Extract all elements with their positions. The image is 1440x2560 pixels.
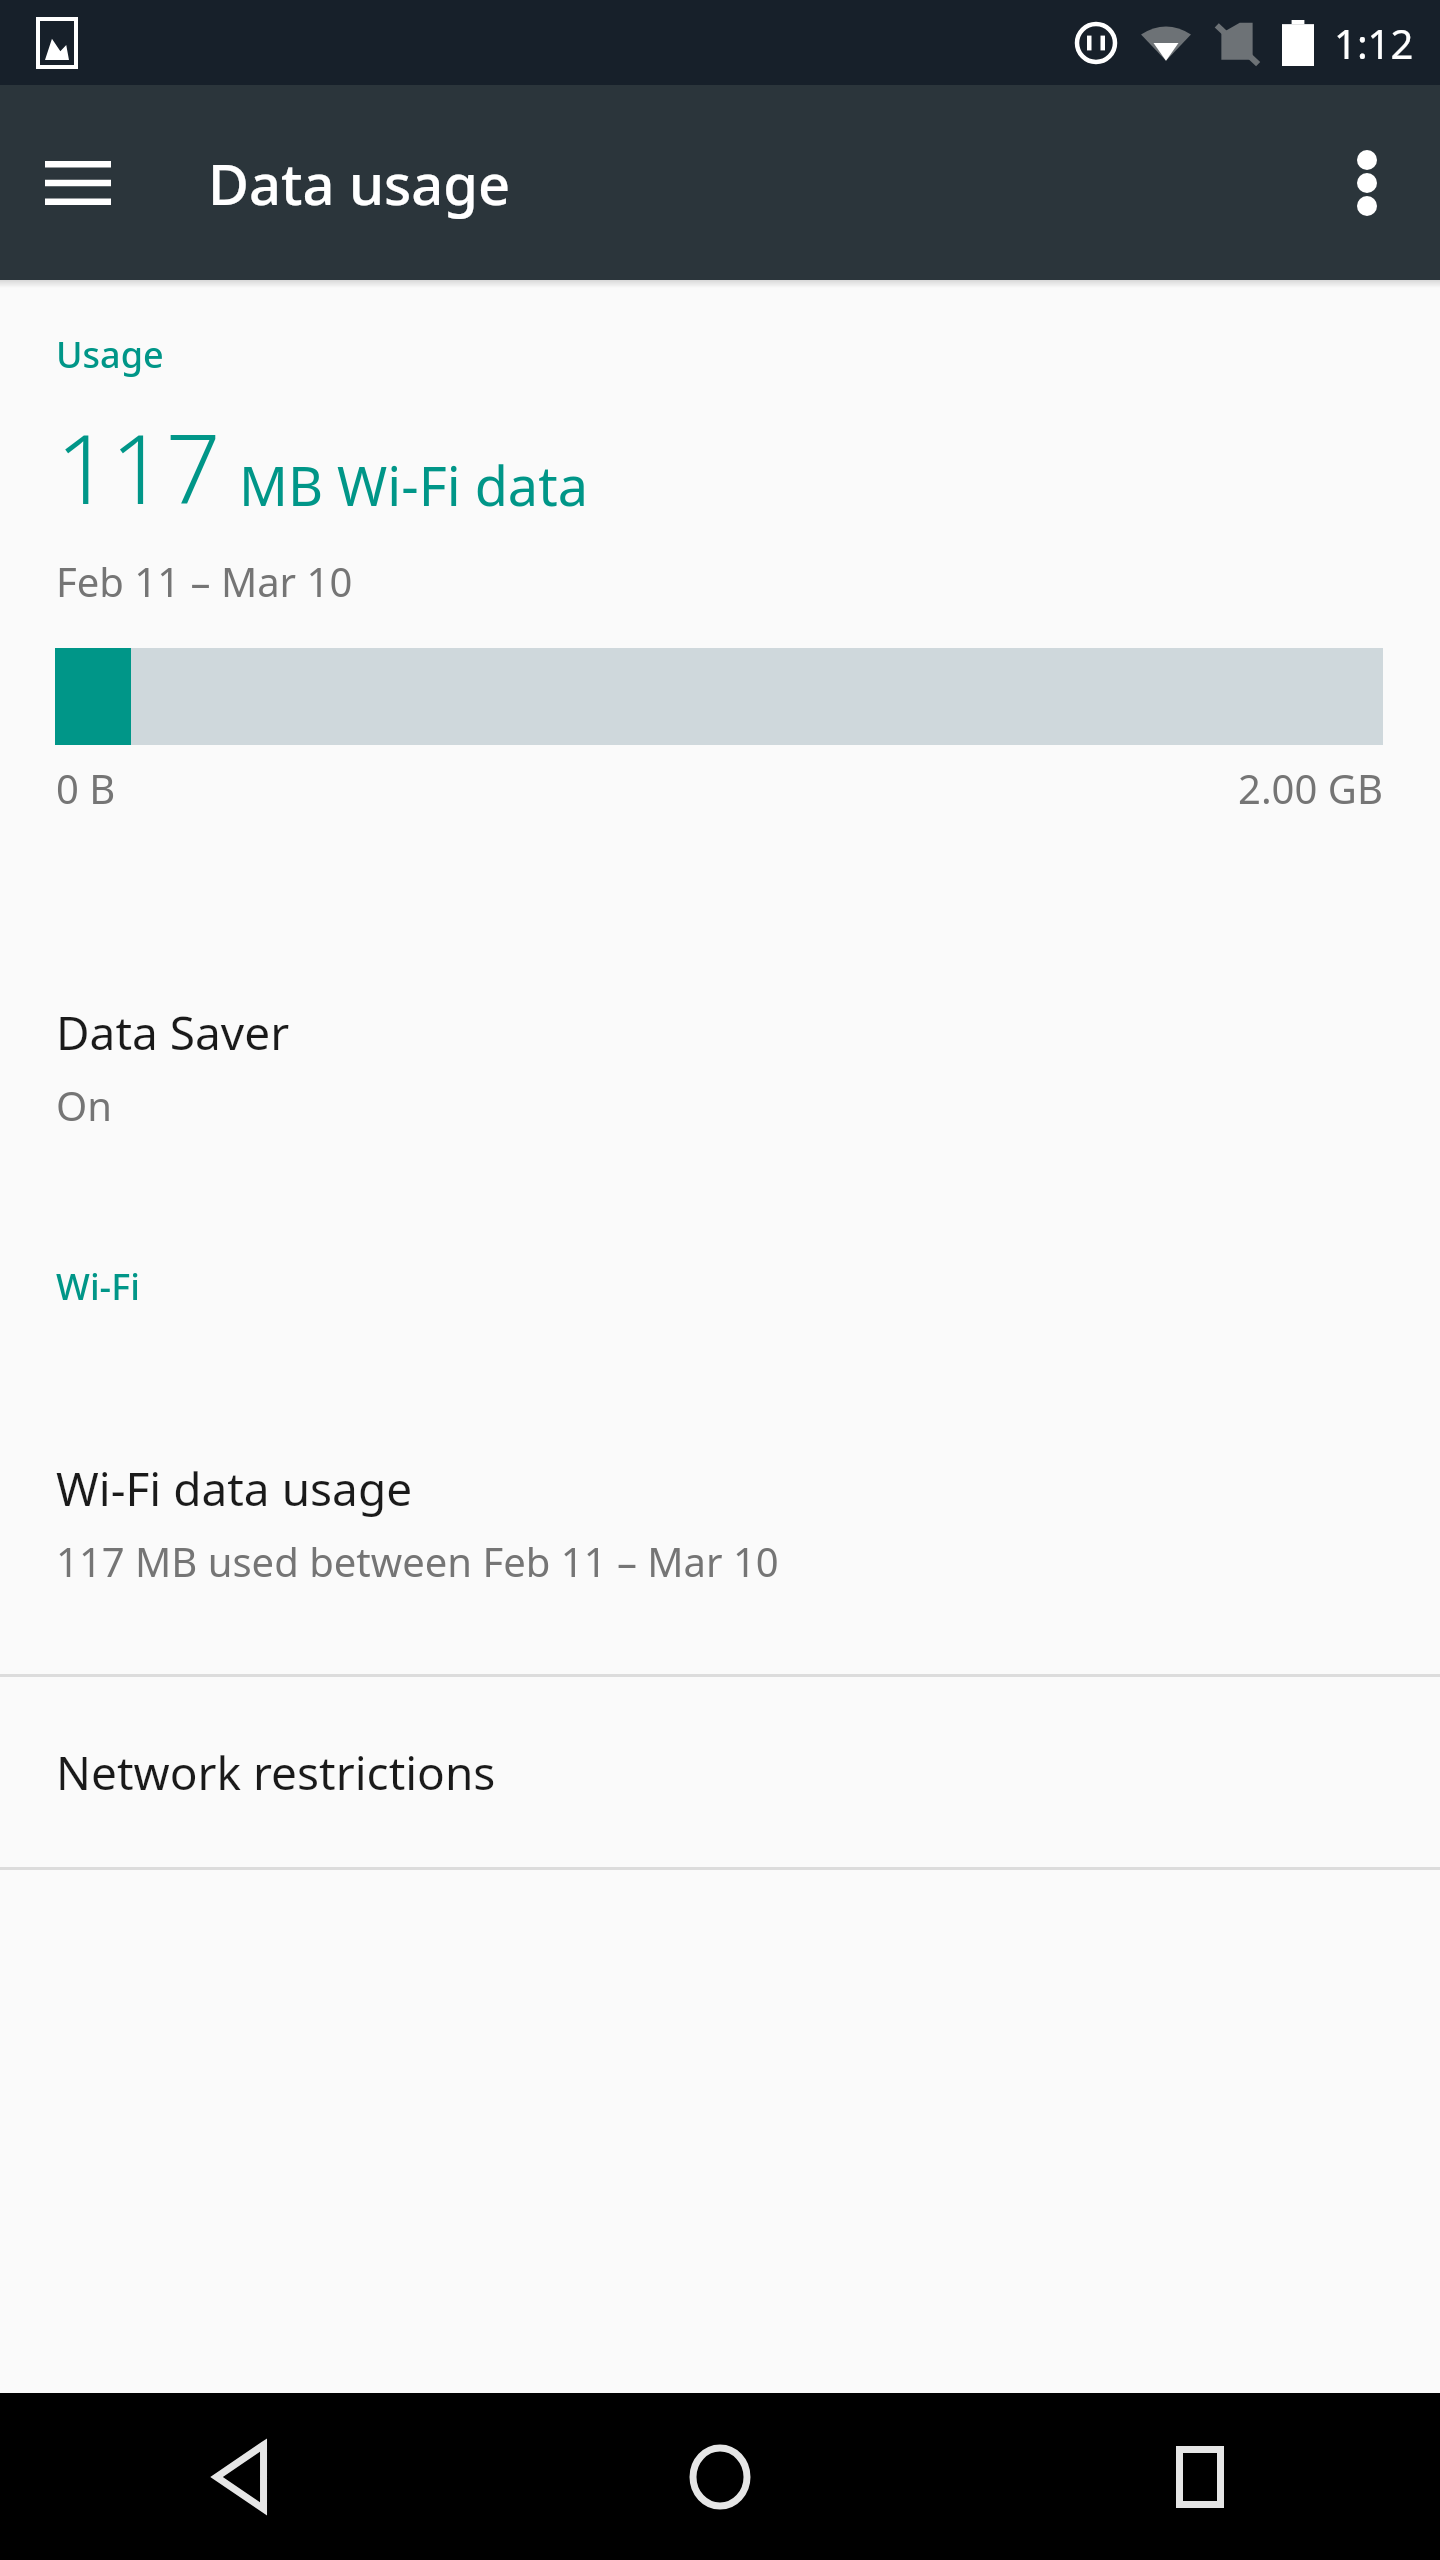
staticText: Data usage	[208, 145, 511, 221]
button[interactable]: Open navigation drawer	[24, 129, 132, 237]
button[interactable]: Recent apps	[960, 2393, 1440, 2560]
staticText: 0 B	[56, 761, 116, 815]
staticText: 117	[56, 401, 221, 532]
button[interactable]: More options	[1314, 130, 1420, 236]
staticText: MB Wi-Fi data	[239, 448, 588, 522]
staticText: Usage	[56, 330, 164, 379]
staticText: Wi-Fi data usage	[56, 1457, 413, 1520]
staticText: Feb 11 – Mar 10	[56, 554, 353, 608]
button[interactable]: Wi-Fi data usage	[0, 1457, 1440, 1588]
button[interactable]: Back	[0, 2393, 480, 2560]
staticText: 117 MB used between Feb 11 – Mar 10	[56, 1534, 779, 1588]
button[interactable]: Data Saver	[0, 1001, 1440, 1132]
staticText: 2.00 GB	[1238, 761, 1383, 815]
staticText: Network restrictions	[56, 1741, 496, 1804]
staticText: Wi-Fi	[56, 1262, 140, 1311]
button[interactable]: Network restrictions	[0, 1677, 1440, 1867]
button[interactable]: Home	[480, 2393, 960, 2560]
staticText: Data Saver	[56, 1001, 290, 1064]
staticText: On	[56, 1078, 112, 1132]
staticText: 1:12	[1334, 16, 1414, 70]
